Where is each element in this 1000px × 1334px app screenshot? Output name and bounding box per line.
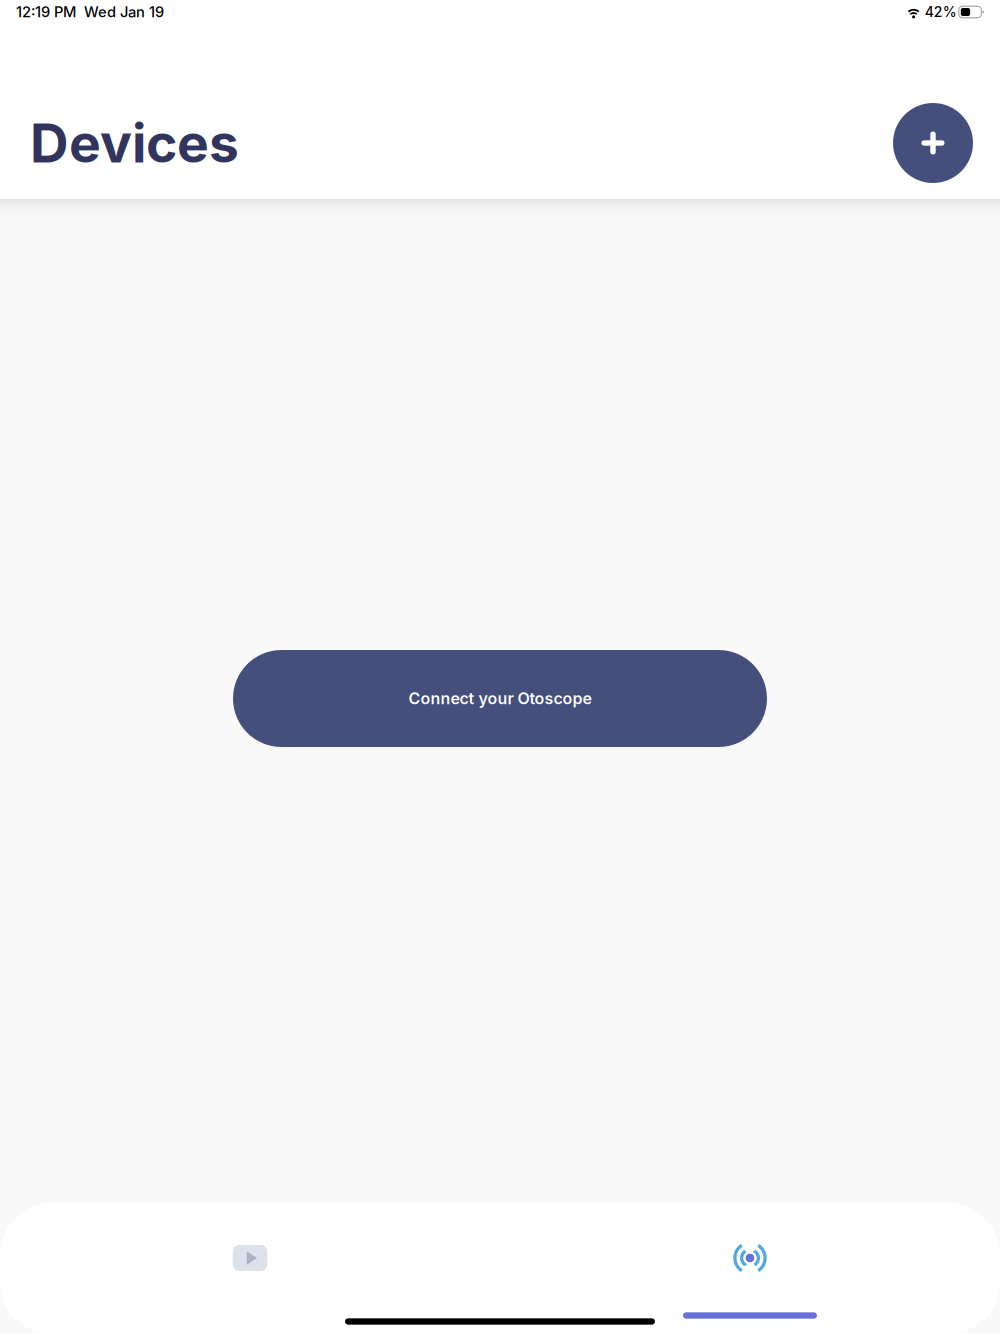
staticText: Devices <box>30 111 239 175</box>
button[interactable]: Add device <box>893 103 973 183</box>
button[interactable]: Recordings <box>0 1222 500 1294</box>
button[interactable]: Connect your Otoscope <box>233 650 767 747</box>
staticText: Connect your Otoscope <box>408 689 591 708</box>
button[interactable]: Devices <box>500 1222 1000 1294</box>
staticText: 12:19 PM <box>16 3 76 21</box>
staticText: Wed Jan 19 <box>84 3 164 21</box>
staticText: 42% <box>925 3 957 20</box>
